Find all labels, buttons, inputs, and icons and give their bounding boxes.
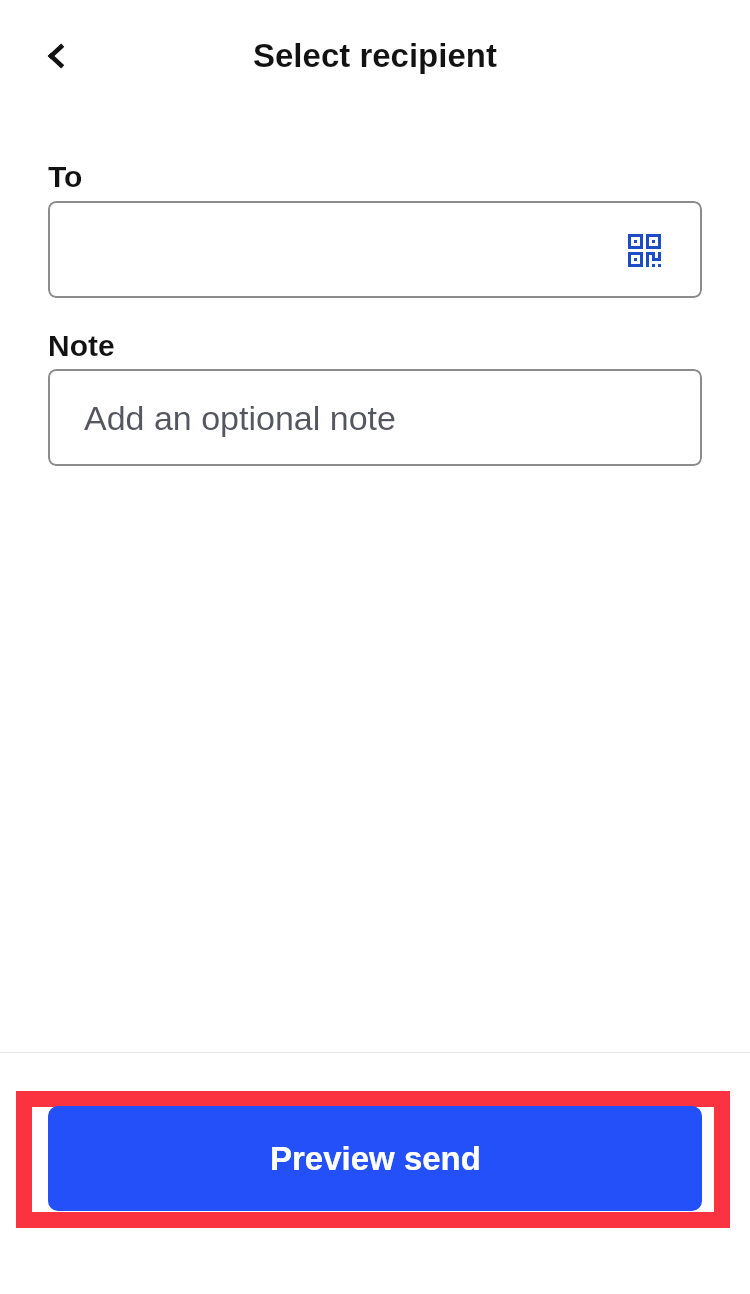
button[interactable]: Scan QR code [48,201,702,298]
staticText: Note [48,329,115,363]
staticText: Add an optional note [84,399,396,437]
button[interactable]: Add an optional note [48,369,702,466]
button[interactable]: Scan QR code [616,222,672,278]
staticText: To [48,160,83,194]
button[interactable]: Back [22,22,90,90]
button[interactable]: Preview send [48,1106,702,1211]
staticText: Select recipient [253,37,497,74]
staticText: Preview send [270,1140,481,1177]
